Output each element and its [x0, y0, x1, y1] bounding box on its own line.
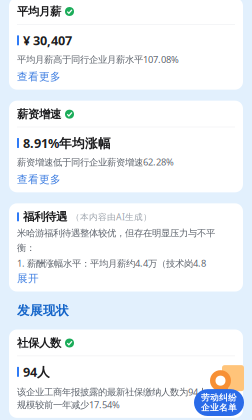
staticText: （本内容由AI生成） — [71, 211, 152, 223]
staticText: 该企业工商年报披露的最新社保缴纳人数为94人，人员规模较前一年减少17.54% — [17, 385, 234, 411]
staticText: 1. 薪酬涨幅水平：平均月薪约4.4万（技术岗4.8 — [17, 257, 206, 269]
staticText: 福利待遇 — [23, 210, 67, 224]
staticText: 94人 — [23, 363, 50, 380]
staticText: 展开 — [17, 272, 39, 285]
button[interactable]: 展开 — [17, 273, 235, 285]
staticText: 平均月薪高于同行企业月薪水平107.08% — [17, 53, 179, 66]
staticText: 企业名单 — [201, 402, 237, 413]
staticText: 衡： — [17, 242, 35, 254]
staticText: 8.91%年均涨幅 — [23, 134, 111, 152]
button[interactable]: 劳动纠纷企业名单 — [194, 363, 244, 416]
staticText: 劳动纠纷 — [201, 392, 237, 403]
staticText: 发展现状 — [17, 303, 69, 319]
staticText: 米哈游福利待遇整体较优，但存在明显压力与不平 — [17, 227, 215, 239]
staticText: 薪资增速低于同行企业薪资增速62.28% — [17, 156, 174, 168]
staticText: 薪资增速 — [17, 107, 61, 121]
staticText: 查看更多 — [17, 173, 61, 186]
staticText: 平均月薪 — [17, 4, 61, 19]
button[interactable]: 查看更多 — [17, 71, 235, 83]
button[interactable]: 查看更多 — [17, 173, 235, 185]
staticText: 社保人数 — [17, 336, 61, 350]
staticText: ¥ 30,407 — [23, 32, 72, 49]
staticText: 查看更多 — [17, 70, 61, 83]
